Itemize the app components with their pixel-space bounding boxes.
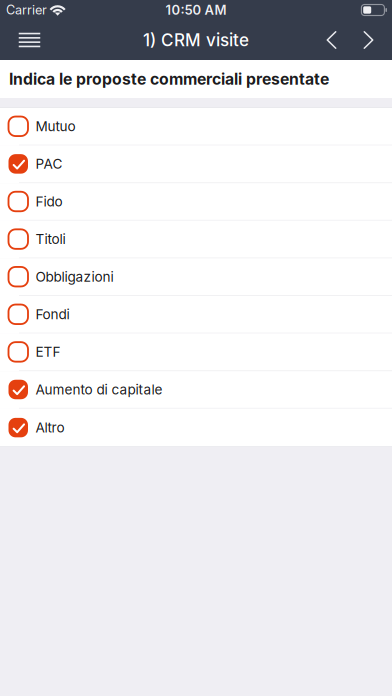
button[interactable]: Fondi bbox=[0, 296, 392, 334]
staticText: Obbligazioni bbox=[35, 268, 113, 285]
button[interactable]: Aumento di capitale bbox=[0, 371, 392, 409]
staticText: Fondi bbox=[35, 306, 69, 323]
staticText: ETF bbox=[35, 344, 60, 360]
button[interactable]: Next bbox=[350, 20, 387, 60]
button[interactable]: Altro bbox=[0, 409, 392, 446]
staticText: Mutuo bbox=[35, 118, 75, 135]
staticText: Aumento di capitale bbox=[35, 381, 162, 398]
staticText: Altro bbox=[35, 419, 64, 436]
button[interactable]: Obbligazioni bbox=[0, 258, 392, 296]
staticText: Indica le proposte commerciali presentat… bbox=[9, 69, 329, 88]
button[interactable]: ETF bbox=[0, 334, 392, 371]
button[interactable]: Fido bbox=[0, 183, 392, 221]
staticText: 10:50 AM bbox=[165, 2, 226, 18]
button[interactable]: PAC bbox=[0, 146, 392, 183]
staticText: PAC bbox=[35, 156, 62, 172]
button[interactable]: Menu bbox=[8, 20, 51, 60]
staticText: Carrier bbox=[6, 2, 47, 18]
staticText: Titoli bbox=[35, 231, 65, 247]
button[interactable]: Titoli bbox=[0, 221, 392, 258]
button[interactable]: Previous bbox=[313, 20, 350, 60]
button[interactable]: Mutuo bbox=[0, 108, 392, 146]
staticText: 1) CRM visite bbox=[143, 30, 249, 50]
staticText: Fido bbox=[35, 193, 62, 210]
